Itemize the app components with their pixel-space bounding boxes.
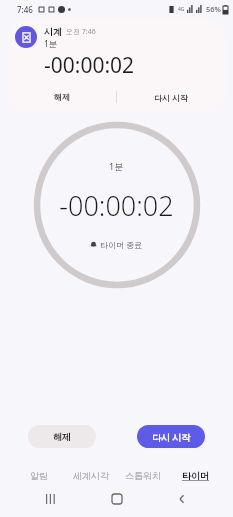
staticText: -00:00:02 bbox=[44, 51, 135, 80]
button[interactable]: 해제 bbox=[7, 85, 116, 109]
staticText: 오전 7:46 bbox=[66, 27, 96, 37]
button[interactable]: Recent apps bbox=[36, 484, 66, 514]
staticText: 스톱워치 bbox=[125, 470, 161, 481]
staticText: 타이머 bbox=[182, 470, 209, 481]
staticText: 4G bbox=[178, 6, 185, 13]
staticText: 해제 bbox=[53, 431, 71, 442]
staticText: 세계시각 bbox=[73, 470, 109, 481]
button[interactable]: 스톱워치 bbox=[117, 470, 169, 481]
button[interactable]: 알림 bbox=[12, 470, 65, 481]
staticText: -00:00:02 bbox=[59, 187, 174, 224]
staticText: 56% bbox=[206, 4, 221, 14]
staticText: 해제 bbox=[54, 92, 70, 102]
button[interactable]: 세계시각 bbox=[65, 470, 117, 481]
button[interactable]: Back bbox=[167, 484, 197, 514]
staticText: 시계 bbox=[44, 26, 62, 37]
staticText: 7:46 bbox=[17, 4, 33, 15]
staticText: 1분 bbox=[109, 160, 124, 172]
staticText: 타이머 종료 bbox=[100, 239, 143, 250]
button[interactable]: Home bbox=[102, 484, 132, 514]
button[interactable]: 다시 시작 bbox=[117, 85, 226, 109]
staticText: 다시 시작 bbox=[154, 92, 189, 103]
staticText: 1분 bbox=[44, 38, 58, 50]
button[interactable]: 다시 시작 bbox=[137, 425, 205, 448]
staticText: 알림 bbox=[30, 470, 48, 481]
staticText: 다시 시작 bbox=[152, 431, 191, 443]
button[interactable]: 타이머 bbox=[169, 470, 221, 481]
button[interactable]: 해제 bbox=[28, 425, 96, 448]
